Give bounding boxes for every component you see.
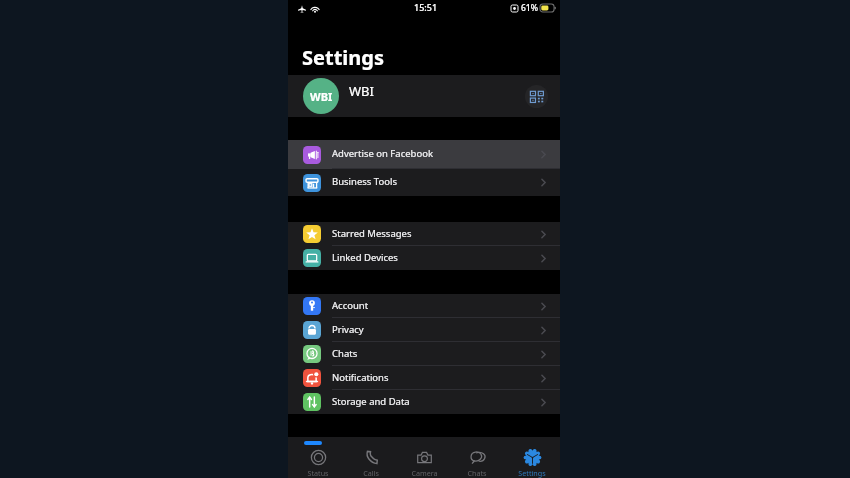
staticText: Storage and Data bbox=[332, 395, 410, 408]
button[interactable]: Privacy bbox=[288, 318, 560, 342]
button[interactable]: Notifications bbox=[288, 366, 560, 390]
button[interactable]: Linked Devices bbox=[288, 246, 560, 270]
button[interactable]: Chats bbox=[455, 449, 499, 478]
staticText: Business Tools bbox=[332, 175, 397, 188]
staticText: Settings bbox=[302, 44, 384, 71]
staticText: Chats bbox=[332, 347, 358, 360]
staticText: Starred Messages bbox=[332, 227, 412, 240]
button[interactable]: Business Tools bbox=[288, 169, 560, 196]
button[interactable]: Account bbox=[288, 294, 560, 318]
staticText: WBI bbox=[349, 82, 374, 100]
staticText: WBI bbox=[310, 89, 333, 104]
staticText: Settings bbox=[518, 468, 546, 478]
button[interactable]: Status bbox=[296, 449, 340, 478]
staticText: Status bbox=[307, 468, 329, 478]
button[interactable]: Camera bbox=[402, 449, 446, 478]
button[interactable]: My QR code bbox=[525, 85, 548, 108]
staticText: Account bbox=[332, 299, 369, 312]
button[interactable]: Storage and Data bbox=[288, 390, 560, 414]
button[interactable]: Chats bbox=[288, 342, 560, 366]
staticText: Camera bbox=[411, 468, 438, 478]
staticText: Linked Devices bbox=[332, 251, 398, 264]
button[interactable]: Settings bbox=[510, 449, 554, 478]
button[interactable]: Starred Messages bbox=[288, 222, 560, 246]
button[interactable]: WBI bbox=[288, 75, 560, 117]
staticText: Privacy bbox=[332, 323, 364, 336]
staticText: Calls bbox=[363, 468, 379, 478]
staticText: Notifications bbox=[332, 371, 389, 384]
staticText: Chats bbox=[467, 468, 487, 478]
staticText: 61% bbox=[521, 2, 538, 14]
button[interactable]: Advertise on Facebook bbox=[288, 140, 560, 169]
staticText: 15:51 bbox=[414, 1, 438, 13]
staticText: Advertise on Facebook bbox=[332, 147, 433, 160]
button[interactable]: Calls bbox=[349, 449, 393, 478]
